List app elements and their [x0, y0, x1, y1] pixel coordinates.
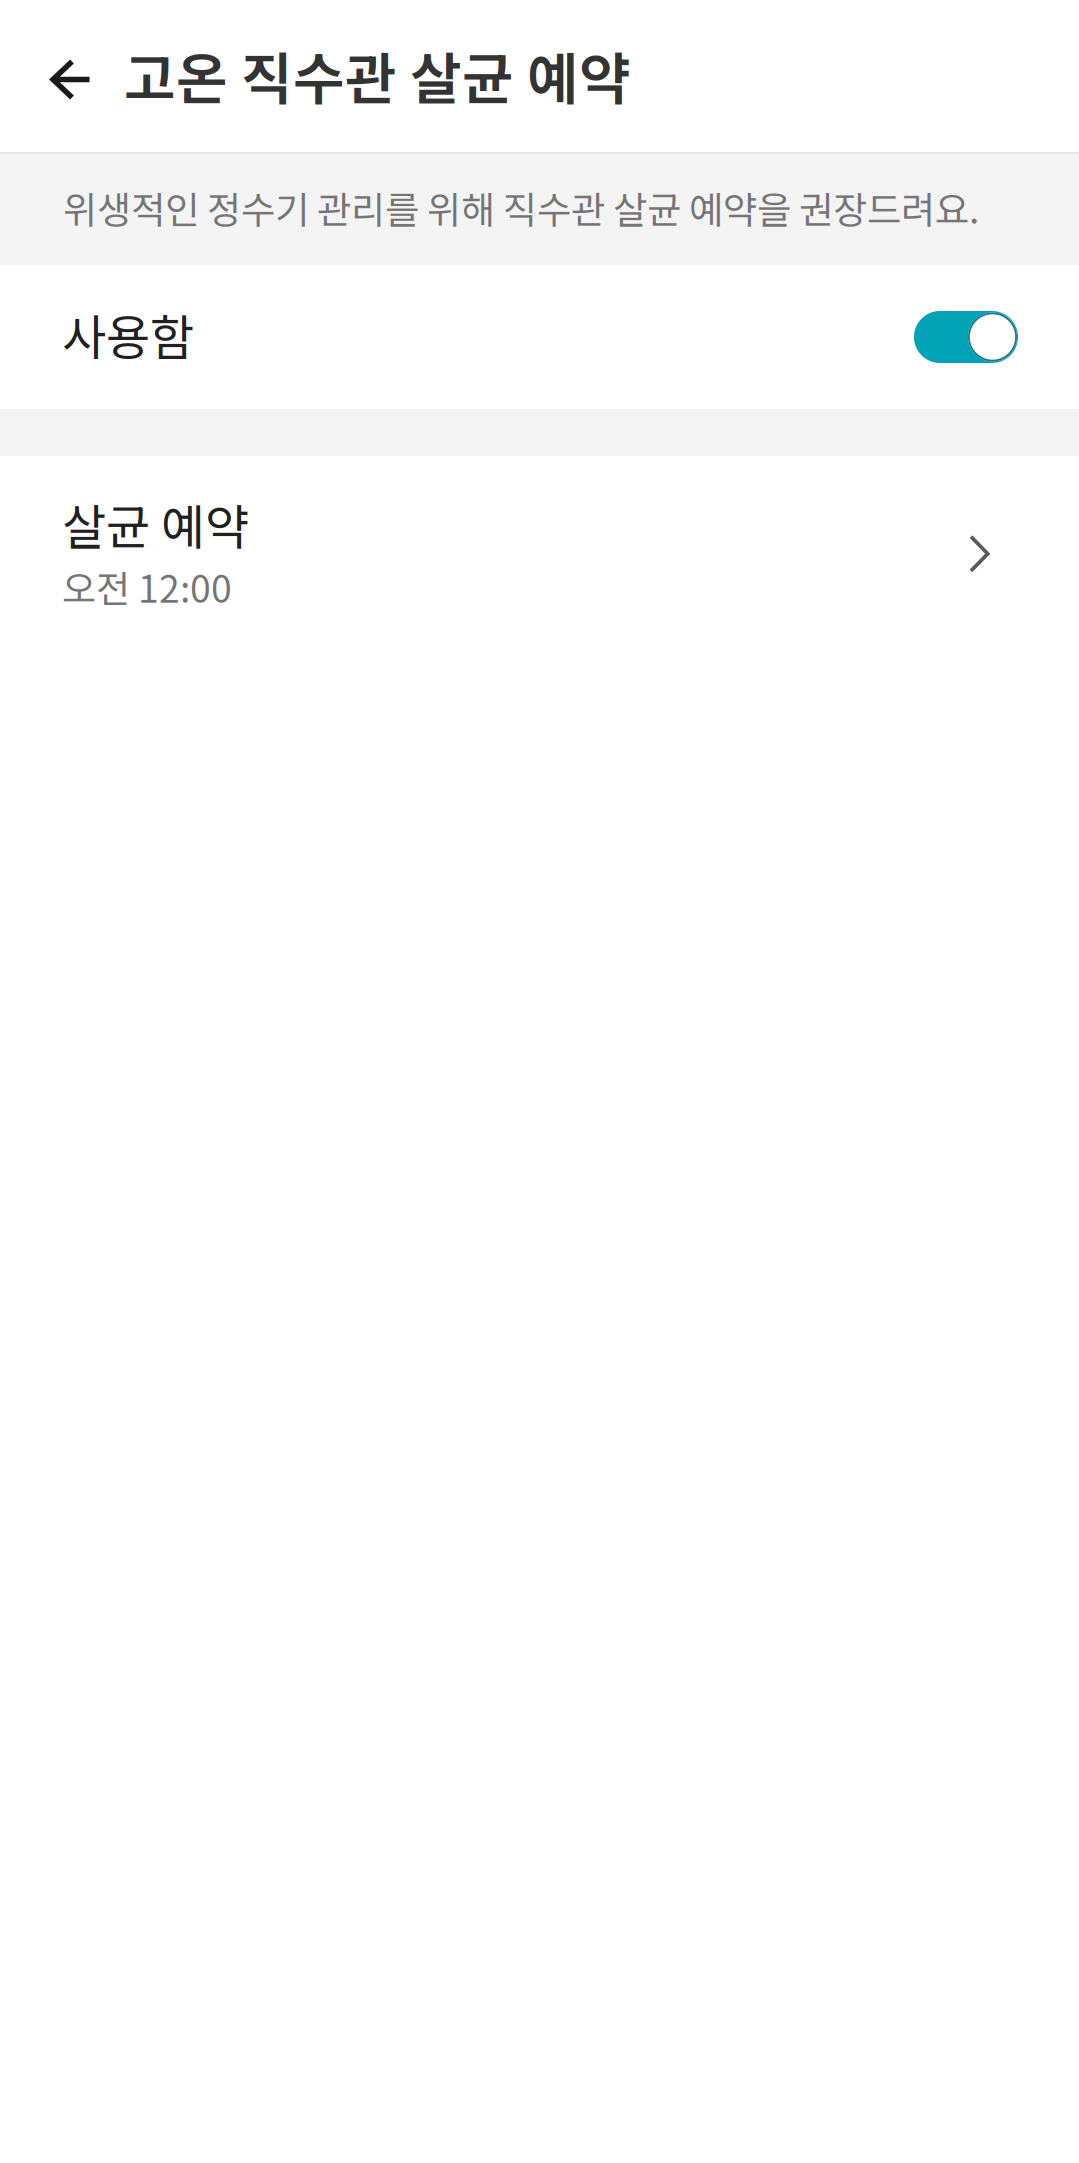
button[interactable]: 사용함 [0, 265, 1079, 409]
button[interactable]: 살균 예약 [0, 456, 1079, 632]
staticText: 오전 12:00 [62, 559, 232, 614]
staticText: 고온 직수관 살균 예약 [124, 34, 631, 116]
staticText: 사용함 [62, 299, 194, 369]
staticText: 살균 예약 [62, 489, 249, 558]
staticText: 위생적인 정수기 관리를 위해 직수관 살균 예약을 권장드려요. [63, 180, 979, 235]
button[interactable]: Back [0, 0, 120, 152]
